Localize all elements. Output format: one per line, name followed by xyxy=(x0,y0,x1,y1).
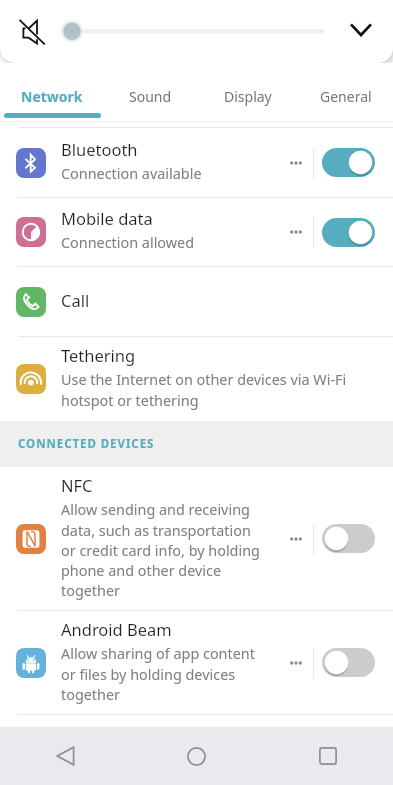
button[interactable]: Turn off xyxy=(322,218,375,247)
button[interactable]: More options xyxy=(283,219,309,245)
staticText: Allow sharing of app content or files by… xyxy=(61,644,264,704)
button[interactable]: Network xyxy=(2,82,101,110)
button[interactable]: Turn on xyxy=(322,648,375,677)
button[interactable]: Tethering xyxy=(0,337,393,421)
button[interactable]: Home xyxy=(131,727,262,785)
staticText: Use the Internet on other devices via Wi… xyxy=(61,370,353,410)
button[interactable]: NFC xyxy=(0,467,393,610)
button[interactable]: Volume slider xyxy=(56,16,328,46)
staticText: Android Beam xyxy=(61,618,172,640)
staticText: Allow sending and receiving data, such a… xyxy=(61,500,264,600)
button[interactable]: Mobile data xyxy=(0,198,393,266)
button[interactable]: Turn off xyxy=(322,148,375,177)
staticText: Connection available xyxy=(61,164,202,184)
button[interactable]: Sound xyxy=(101,82,199,110)
staticText: Mobile data xyxy=(61,207,153,229)
button[interactable]: Turn on xyxy=(322,524,375,553)
button[interactable]: Call xyxy=(0,267,393,336)
staticText: Call xyxy=(61,289,90,311)
button[interactable]: More options xyxy=(283,650,309,676)
button[interactable]: More options xyxy=(283,150,309,176)
button[interactable]: General xyxy=(297,82,393,110)
button[interactable]: Display xyxy=(199,82,297,110)
button[interactable]: Recents xyxy=(262,727,393,785)
staticText: Sound xyxy=(129,87,172,106)
staticText: CONNECTED DEVICES xyxy=(18,436,155,452)
staticText: Bluetooth xyxy=(61,138,138,160)
staticText: Display xyxy=(224,87,272,106)
staticText: Network xyxy=(21,87,83,106)
staticText: Tethering xyxy=(61,344,136,366)
staticText: General xyxy=(320,87,372,106)
button[interactable]: Collapse xyxy=(343,11,379,47)
staticText: NFC xyxy=(61,474,93,496)
button[interactable]: Android Beam xyxy=(0,611,393,714)
button[interactable]: Mute xyxy=(16,15,48,47)
staticText: Connection allowed xyxy=(61,233,195,253)
button[interactable]: More options xyxy=(283,526,309,552)
button[interactable]: Back xyxy=(0,727,131,785)
button[interactable]: Bluetooth xyxy=(0,128,393,197)
